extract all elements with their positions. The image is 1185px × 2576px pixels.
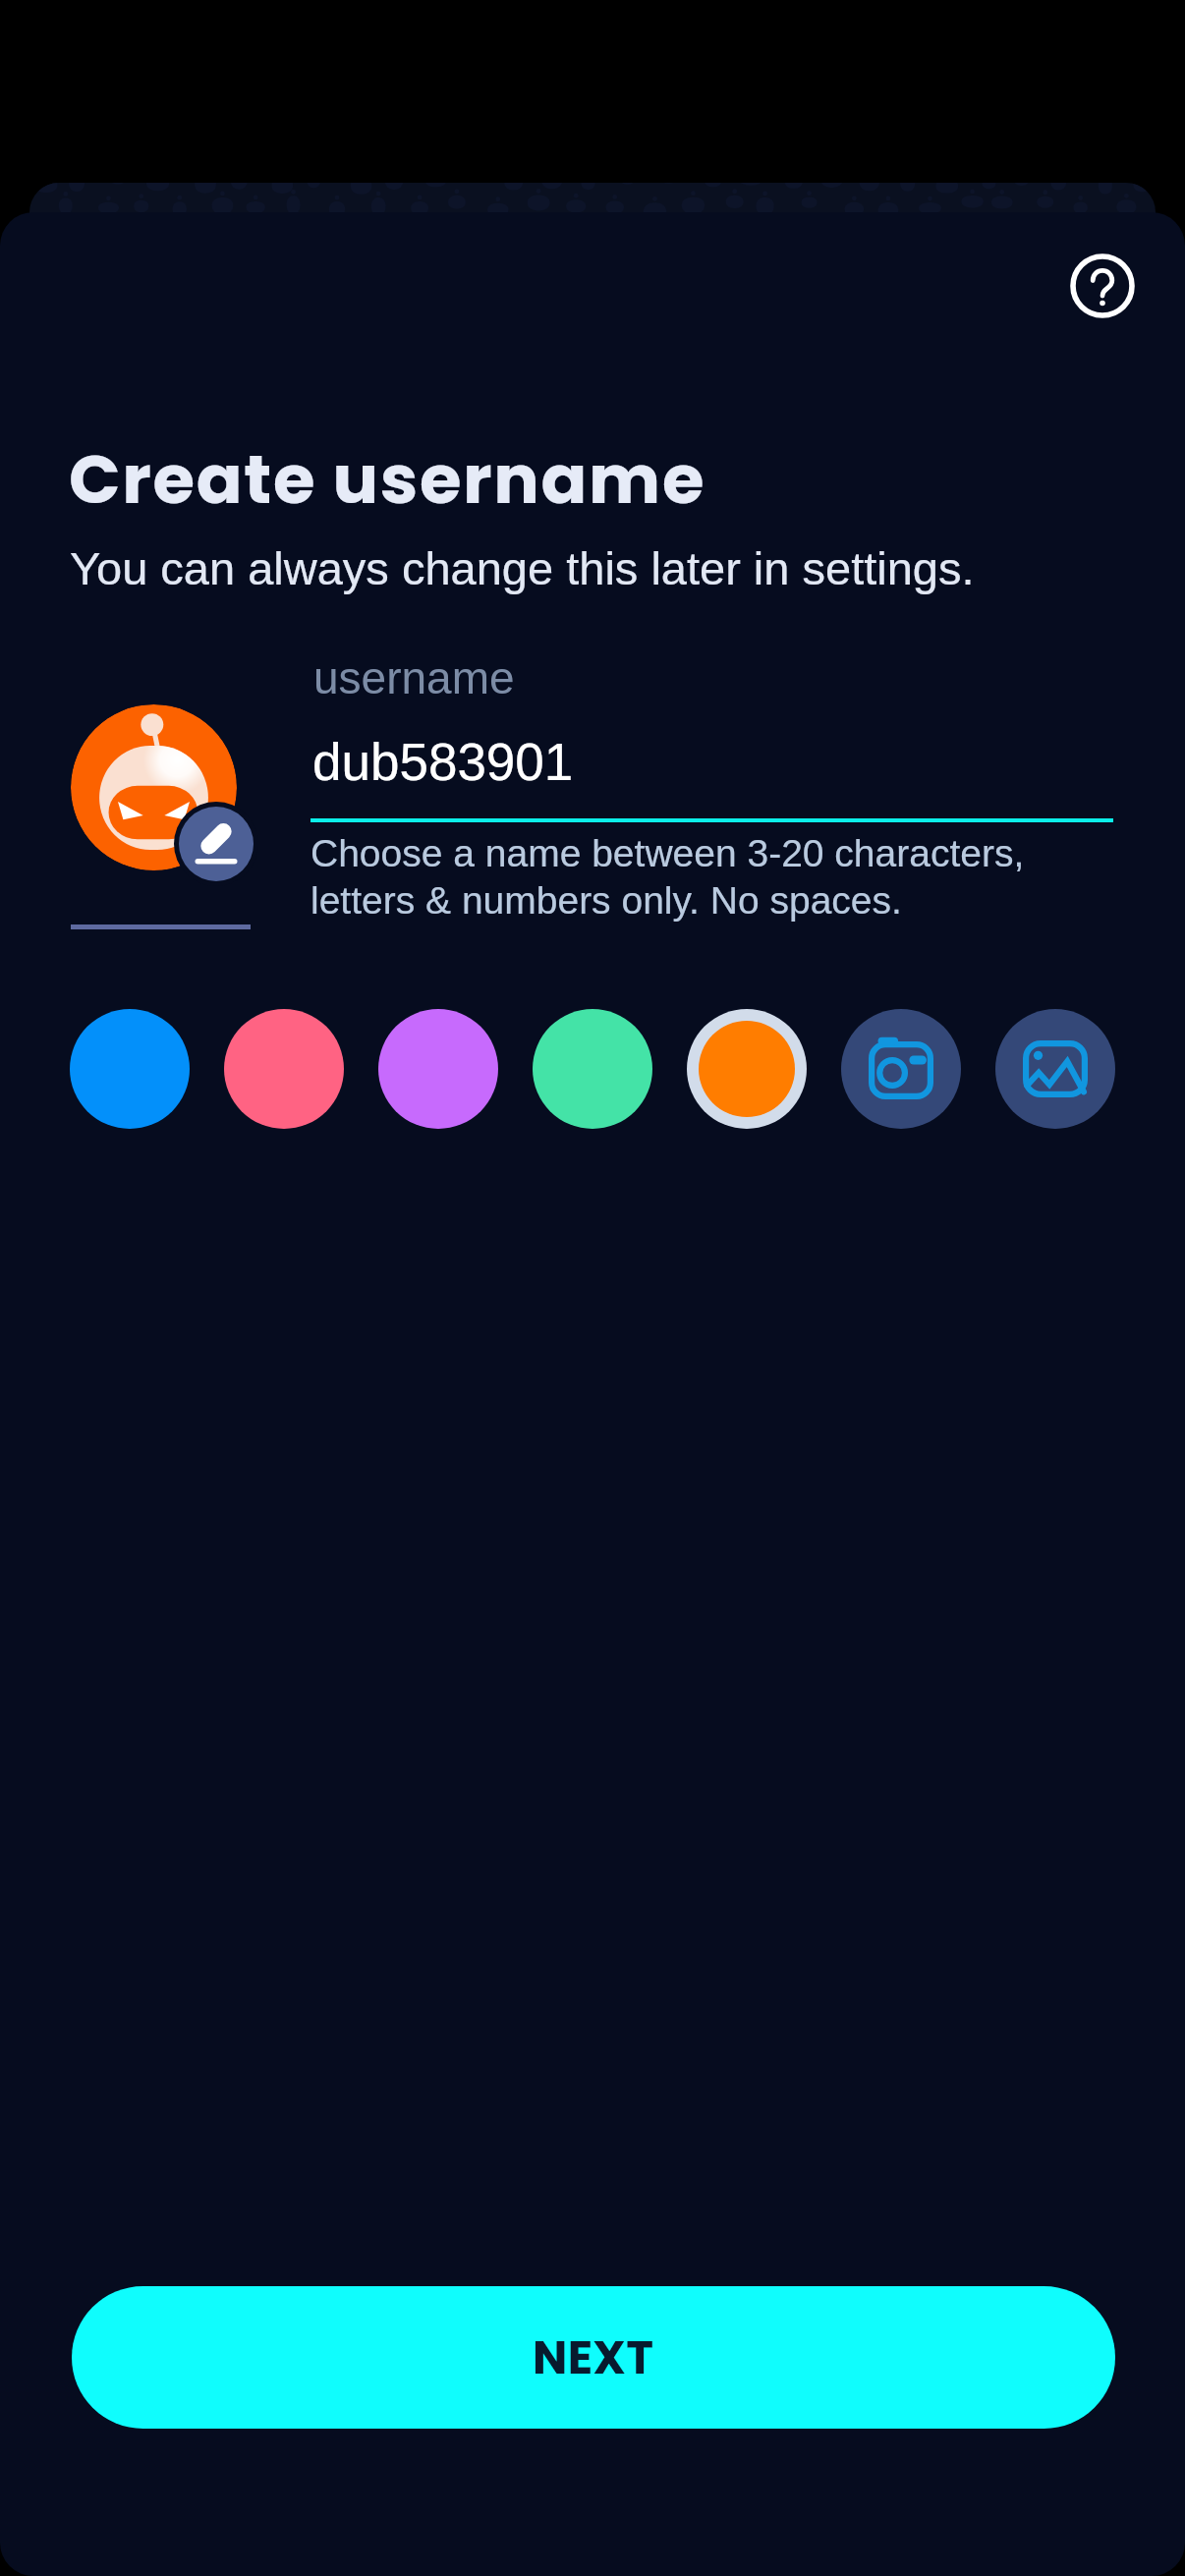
staticText: NEXT xyxy=(533,2325,654,2390)
button[interactable]: Help xyxy=(1057,241,1148,331)
button[interactable]: Colour swatch xyxy=(533,1009,652,1129)
button[interactable]: Choose image xyxy=(995,1009,1115,1129)
button[interactable]: Colour swatch xyxy=(224,1009,344,1129)
button[interactable]: Colour swatch xyxy=(70,1009,190,1129)
button[interactable]: Avatar xyxy=(71,704,237,870)
staticText: Choose a name between 3-20 characters, l… xyxy=(310,832,1025,922)
staticText: Create username xyxy=(69,432,706,528)
staticText: You can always change this later in sett… xyxy=(70,542,975,594)
button[interactable]: Selected colour xyxy=(687,1009,807,1129)
button[interactable]: Take photo xyxy=(841,1009,961,1129)
button[interactable]: Colour swatch xyxy=(378,1009,498,1129)
button[interactable]: NEXT xyxy=(72,2286,1115,2429)
staticText: username xyxy=(313,652,515,702)
staticText: dub583901 xyxy=(312,733,574,791)
button[interactable]: Edit avatar xyxy=(174,802,258,886)
